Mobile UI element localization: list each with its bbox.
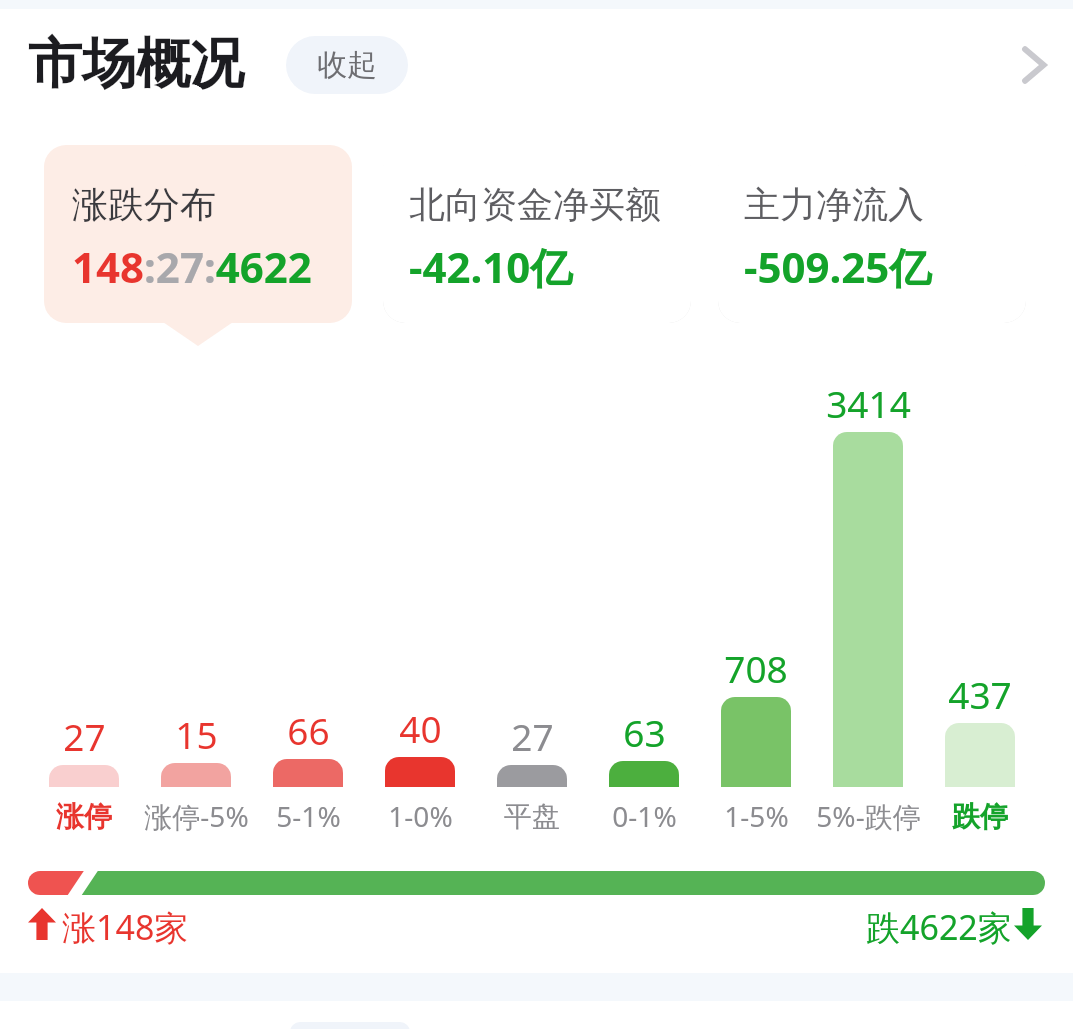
button[interactable]: 市场概况: [28, 26, 254, 102]
staticText: 27: [511, 711, 554, 761]
staticText: 148:27:4622: [72, 238, 312, 295]
staticText: 3414: [826, 378, 911, 428]
staticText: 27: [63, 711, 106, 761]
button[interactable]: 更多: [1000, 32, 1066, 98]
button[interactable]: 北向资金净买额: [383, 145, 691, 323]
staticText: 涨跌分布: [72, 182, 216, 227]
staticText: 涨148家: [62, 904, 189, 950]
staticText: -509.25亿: [744, 238, 932, 295]
staticText: 涨停-5%: [144, 797, 249, 835]
staticText: 63: [623, 707, 666, 757]
staticText: 40: [399, 703, 442, 753]
staticText: 市场概况: [28, 30, 244, 98]
staticText: 15: [175, 709, 218, 759]
staticText: 平盘: [504, 799, 560, 834]
staticText: 1-0%: [388, 797, 453, 835]
staticText: 708: [724, 643, 788, 693]
button[interactable]: 主力净流入: [718, 145, 1026, 323]
staticText: 涨停: [56, 799, 112, 834]
staticText: 437: [948, 669, 1012, 719]
staticText: 主力净流入: [744, 182, 924, 227]
staticText: 北向资金净买额: [409, 182, 661, 227]
button[interactable]: 收起: [286, 36, 408, 94]
staticText: 5-1%: [276, 797, 341, 835]
staticText: 0-1%: [612, 797, 677, 835]
staticText: 跌停: [952, 799, 1008, 834]
staticText: 收起: [317, 46, 377, 84]
staticText: 1-5%: [724, 797, 789, 835]
button[interactable]: 涨148家: [24, 900, 224, 948]
staticText: -42.10亿: [409, 238, 573, 295]
staticText: 5%-跌停: [816, 797, 921, 835]
staticText: 66: [287, 705, 330, 755]
button[interactable]: 跌4622家: [840, 900, 1050, 948]
button[interactable]: 涨跌分布: [44, 145, 352, 323]
staticText: 跌4622家: [866, 904, 1012, 950]
